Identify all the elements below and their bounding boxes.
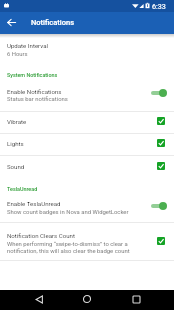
button[interactable]: [0, 36, 174, 60]
button[interactable]: Back: [0, 11, 22, 33]
staticText: TeslaUnread: [7, 186, 38, 192]
staticText: Notification Clears Count: [7, 232, 75, 239]
staticText: When performing “swipe-to-dismiss” to cl…: [7, 241, 128, 248]
button[interactable]: Recents: [119, 290, 153, 310]
staticText: System Notifications: [7, 72, 58, 78]
staticText: Enable Notifications: [7, 88, 62, 95]
staticText: Update Interval: [7, 42, 48, 49]
button[interactable]: Home: [70, 290, 104, 310]
button[interactable]: [0, 156, 174, 177]
button[interactable]: [0, 112, 174, 133]
staticText: 6 Hours: [7, 51, 28, 58]
button[interactable]: [0, 223, 174, 260]
staticText: notification, this will also clear the b…: [7, 248, 130, 255]
staticText: Notifications: [31, 18, 75, 27]
staticText: Enable TeslaUnread: [7, 200, 61, 207]
button[interactable]: Back: [22, 290, 56, 310]
staticText: Show count badges in Nova and WidgetLock…: [7, 209, 129, 216]
staticText: Lights: [7, 140, 24, 147]
staticText: 6:33: [152, 2, 166, 10]
staticText: Sound: [7, 163, 25, 170]
button[interactable]: [0, 82, 174, 111]
staticText: Status bar notifications: [7, 96, 68, 103]
staticText: Vibrate: [7, 118, 27, 125]
button[interactable]: [0, 134, 174, 155]
button[interactable]: [0, 196, 174, 221]
